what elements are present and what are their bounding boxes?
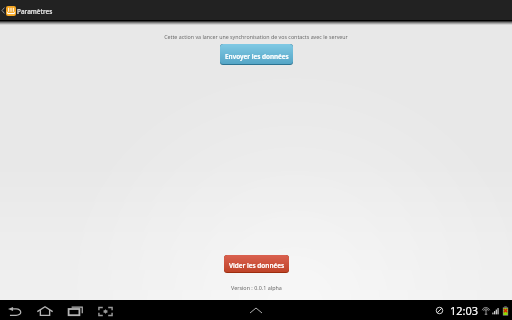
button[interactable]: Vider les données <box>224 255 289 273</box>
staticText: Version : 0.0.1 alpha <box>231 284 282 291</box>
staticText: Cette action va lancer une synchronisati… <box>164 33 348 40</box>
button[interactable]: Show notifications <box>250 308 262 313</box>
staticText: 12:03 <box>450 303 479 318</box>
button[interactable]: Envoyer les données <box>220 44 293 65</box>
button[interactable]: Paramètres, up <box>6 6 16 16</box>
button[interactable]: Home <box>34 300 56 320</box>
button[interactable]: Recent apps <box>64 300 86 320</box>
button[interactable]: Screenshot <box>94 300 116 320</box>
staticText: Vider les données <box>229 261 285 270</box>
button[interactable]: Back <box>4 300 26 320</box>
staticText: Envoyer les données <box>225 52 289 61</box>
staticText: Paramètres <box>17 7 53 16</box>
